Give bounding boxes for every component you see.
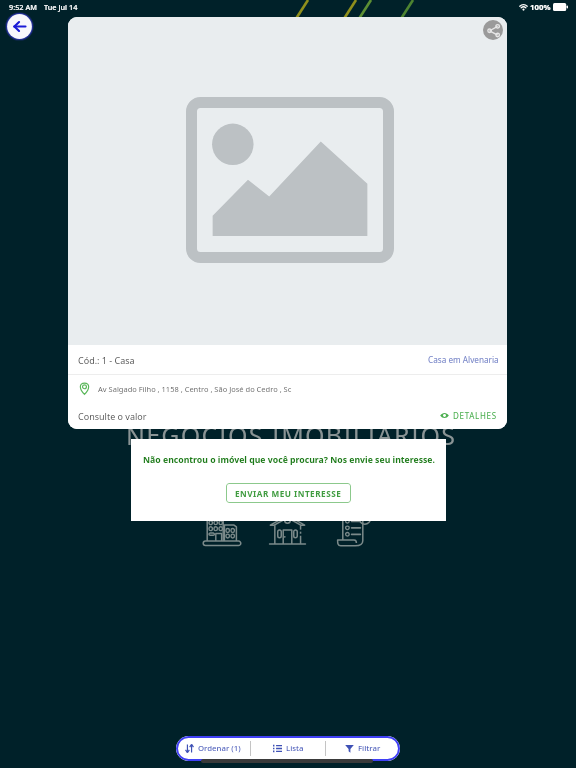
staticText: 9:52 AM — [9, 2, 37, 12]
button[interactable]: ENVIAR MEU INTERESSE — [226, 483, 351, 503]
staticText: Filtrar — [358, 743, 381, 754]
button[interactable]: Cód.: 1 - Casa — [78, 345, 499, 374]
staticText: Casa em Alvenaria — [428, 354, 499, 365]
staticText: DETALHES — [453, 410, 497, 421]
staticText: 100% — [530, 2, 551, 13]
staticText: Tue Jul 14 — [44, 2, 78, 12]
button[interactable]: DETALHES — [438, 406, 499, 425]
staticText: Ordenar (1) — [198, 743, 241, 754]
button[interactable]: Share — [483, 20, 503, 40]
staticText: Consulte o valor — [78, 410, 147, 422]
button[interactable]: Ordenar (1) — [176, 736, 250, 761]
button[interactable]: Filtrar — [326, 736, 400, 761]
staticText: Lista — [286, 743, 304, 754]
button[interactable]: Lista — [251, 736, 325, 761]
staticText: ENVIAR MEU INTERESSE — [235, 488, 342, 499]
staticText: NEGOCIOS IMOBILIARIOS — [126, 418, 457, 452]
button[interactable]: Back — [5, 12, 34, 41]
staticText: Não encontrou o imóvel que você procura?… — [143, 454, 435, 466]
staticText: Cód.: 1 - Casa — [78, 354, 135, 366]
staticText: Av Salgado Filho , 1158 , Centro , São J… — [98, 384, 292, 394]
